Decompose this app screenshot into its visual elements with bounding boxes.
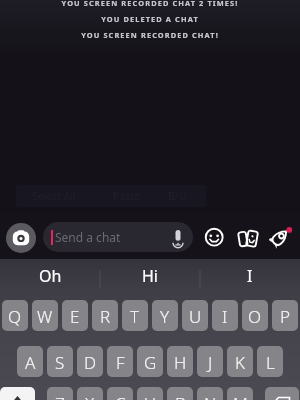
staticText: YOU SCREEN RECORDED CHAT! [0, 30, 300, 40]
staticText: T [130, 305, 140, 328]
button[interactable]: Oh [0, 259, 100, 290]
button[interactable]: Z [47, 387, 73, 400]
staticText: O [248, 305, 262, 328]
button[interactable]: B [167, 387, 193, 400]
button[interactable]: Q [2, 300, 28, 331]
button[interactable]: I [200, 259, 300, 290]
button[interactable]: J [197, 346, 223, 377]
button[interactable]: T [122, 300, 148, 331]
button[interactable]: M [227, 387, 253, 400]
button[interactable]: E [62, 300, 88, 331]
button[interactable]: K [227, 346, 253, 377]
button[interactable]: H [167, 346, 193, 377]
staticText: Z [55, 392, 65, 400]
staticText: YOU DELETED A CHAT [0, 14, 300, 24]
staticText: B [175, 392, 186, 400]
button[interactable]: R [92, 300, 118, 331]
staticText: U [189, 305, 202, 328]
staticText: I [247, 265, 253, 287]
button[interactable]: I [212, 300, 238, 331]
staticText: L [266, 351, 275, 374]
button[interactable]: Y [152, 300, 178, 331]
staticText: N [204, 392, 217, 400]
button[interactable]: Camera [6, 223, 36, 253]
button[interactable]: W [32, 300, 58, 331]
staticText: M [233, 392, 248, 400]
button[interactable]: Stickers [236, 228, 260, 252]
staticText: YOU SCREEN RECORDED CHAT 2 TIMES! [0, 0, 300, 8]
staticText: F [116, 351, 125, 374]
staticText: J [208, 351, 213, 374]
button[interactable]: C [107, 387, 133, 400]
button[interactable]: S [47, 346, 73, 377]
staticText: C [115, 392, 126, 400]
staticText: W [37, 305, 53, 328]
button[interactable]: V [137, 387, 163, 400]
staticText: E [70, 305, 80, 328]
staticText: I [222, 305, 228, 328]
button[interactable]: Rocket [268, 225, 296, 253]
staticText: K [235, 351, 245, 374]
button[interactable]: Send a chat [43, 222, 193, 252]
staticText: G [144, 351, 157, 374]
button[interactable]: O [242, 300, 268, 331]
staticText: P [280, 305, 291, 328]
staticText: V [145, 392, 155, 400]
staticText: X [85, 392, 95, 400]
staticText: H [174, 351, 187, 374]
button[interactable]: P [272, 300, 298, 331]
staticText: Y [160, 305, 170, 328]
staticText: A [25, 351, 36, 374]
button[interactable]: L [257, 346, 283, 377]
button[interactable]: Backspace [265, 387, 299, 400]
staticText: Oh [39, 265, 62, 287]
button[interactable]: N [197, 387, 223, 400]
staticText: Send a chat [55, 229, 121, 245]
button[interactable]: F [107, 346, 133, 377]
button[interactable]: X [77, 387, 103, 400]
button[interactable]: Voice note [168, 229, 188, 249]
button[interactable]: G [137, 346, 163, 377]
button[interactable]: U [182, 300, 208, 331]
button[interactable]: Hi [100, 259, 200, 290]
button[interactable]: D [77, 346, 103, 377]
staticText: R [100, 305, 111, 328]
staticText: S [55, 351, 65, 374]
button[interactable]: Emoji [203, 226, 225, 248]
staticText: D [84, 351, 97, 374]
staticText: Hi [142, 265, 158, 287]
button[interactable]: A [17, 346, 43, 377]
button[interactable]: Shift [0, 387, 35, 400]
staticText: Q [8, 305, 22, 328]
